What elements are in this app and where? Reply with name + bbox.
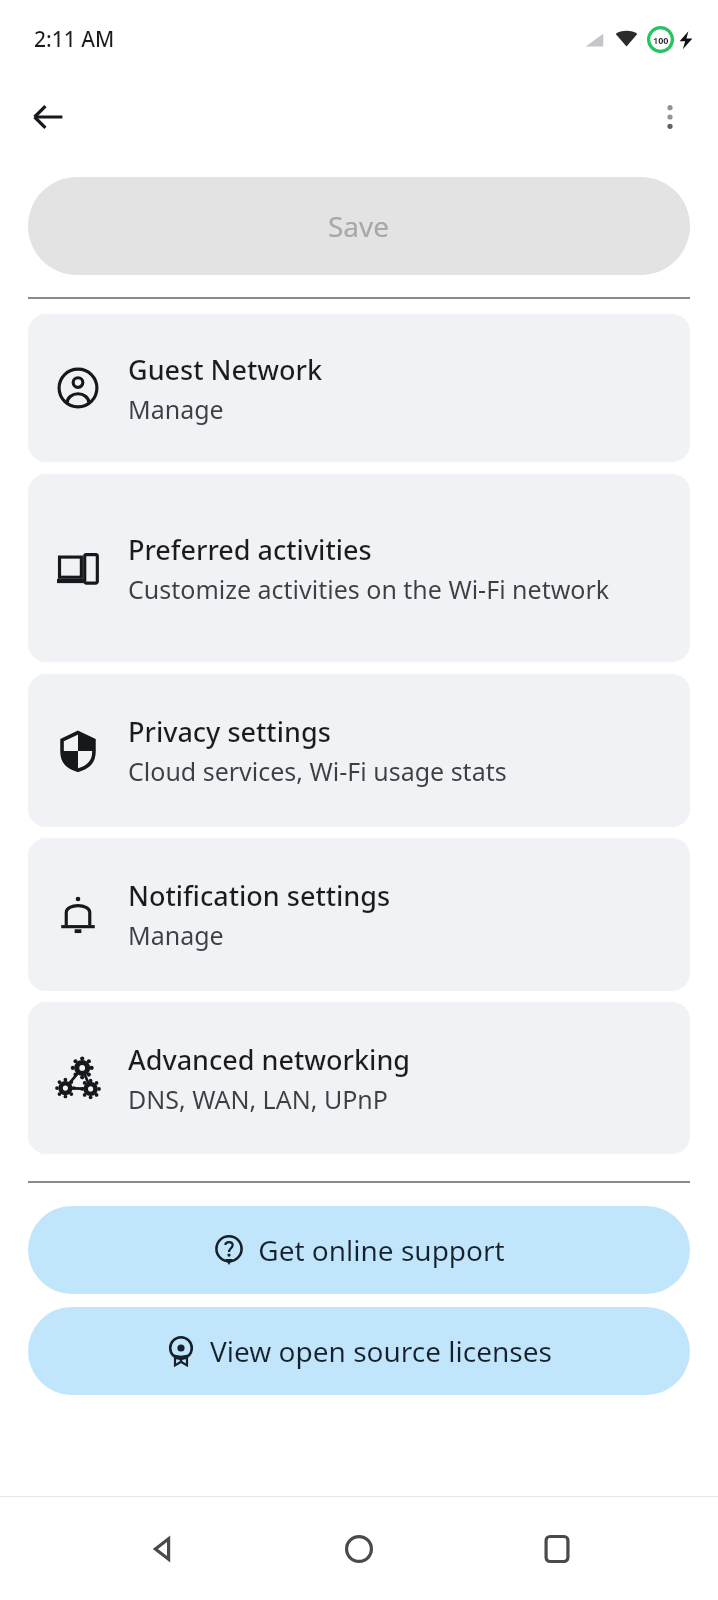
staticText: Customize activities on the Wi-Fi networ… [128, 572, 610, 606]
staticText: Cloud services, Wi-Fi usage stats [128, 754, 507, 788]
button[interactable]: Notification settings [28, 838, 690, 991]
staticText: Guest Network [128, 351, 323, 388]
button[interactable]: View open source licenses [28, 1307, 690, 1395]
button[interactable]: Privacy settings [28, 674, 690, 827]
staticText: Privacy settings [128, 713, 331, 750]
staticText: Preferred activities [128, 531, 372, 568]
staticText: 100 [653, 34, 669, 46]
button[interactable]: Get online support [28, 1206, 690, 1294]
staticText: 2:11 AM [34, 25, 115, 54]
button[interactable]: Preferred activities [28, 474, 690, 662]
button[interactable]: More options [642, 89, 698, 145]
button[interactable]: Back [18, 87, 78, 147]
staticText: DNS, WAN, LAN, UPnP [128, 1082, 388, 1116]
button[interactable]: Home [323, 1513, 395, 1585]
button[interactable]: Save [28, 177, 690, 275]
button[interactable]: Advanced networking [28, 1002, 690, 1154]
staticText: Save [328, 207, 390, 245]
staticText: Manage [128, 918, 224, 952]
staticText: Notification settings [128, 877, 391, 914]
staticText: View open source licenses [210, 1332, 552, 1370]
button[interactable]: Recent apps [521, 1513, 593, 1585]
staticText: Manage [128, 392, 224, 426]
button[interactable]: Back [126, 1513, 198, 1585]
staticText: Get online support [258, 1231, 505, 1269]
button[interactable]: Guest Network [28, 314, 690, 462]
staticText: Advanced networking [128, 1041, 411, 1078]
